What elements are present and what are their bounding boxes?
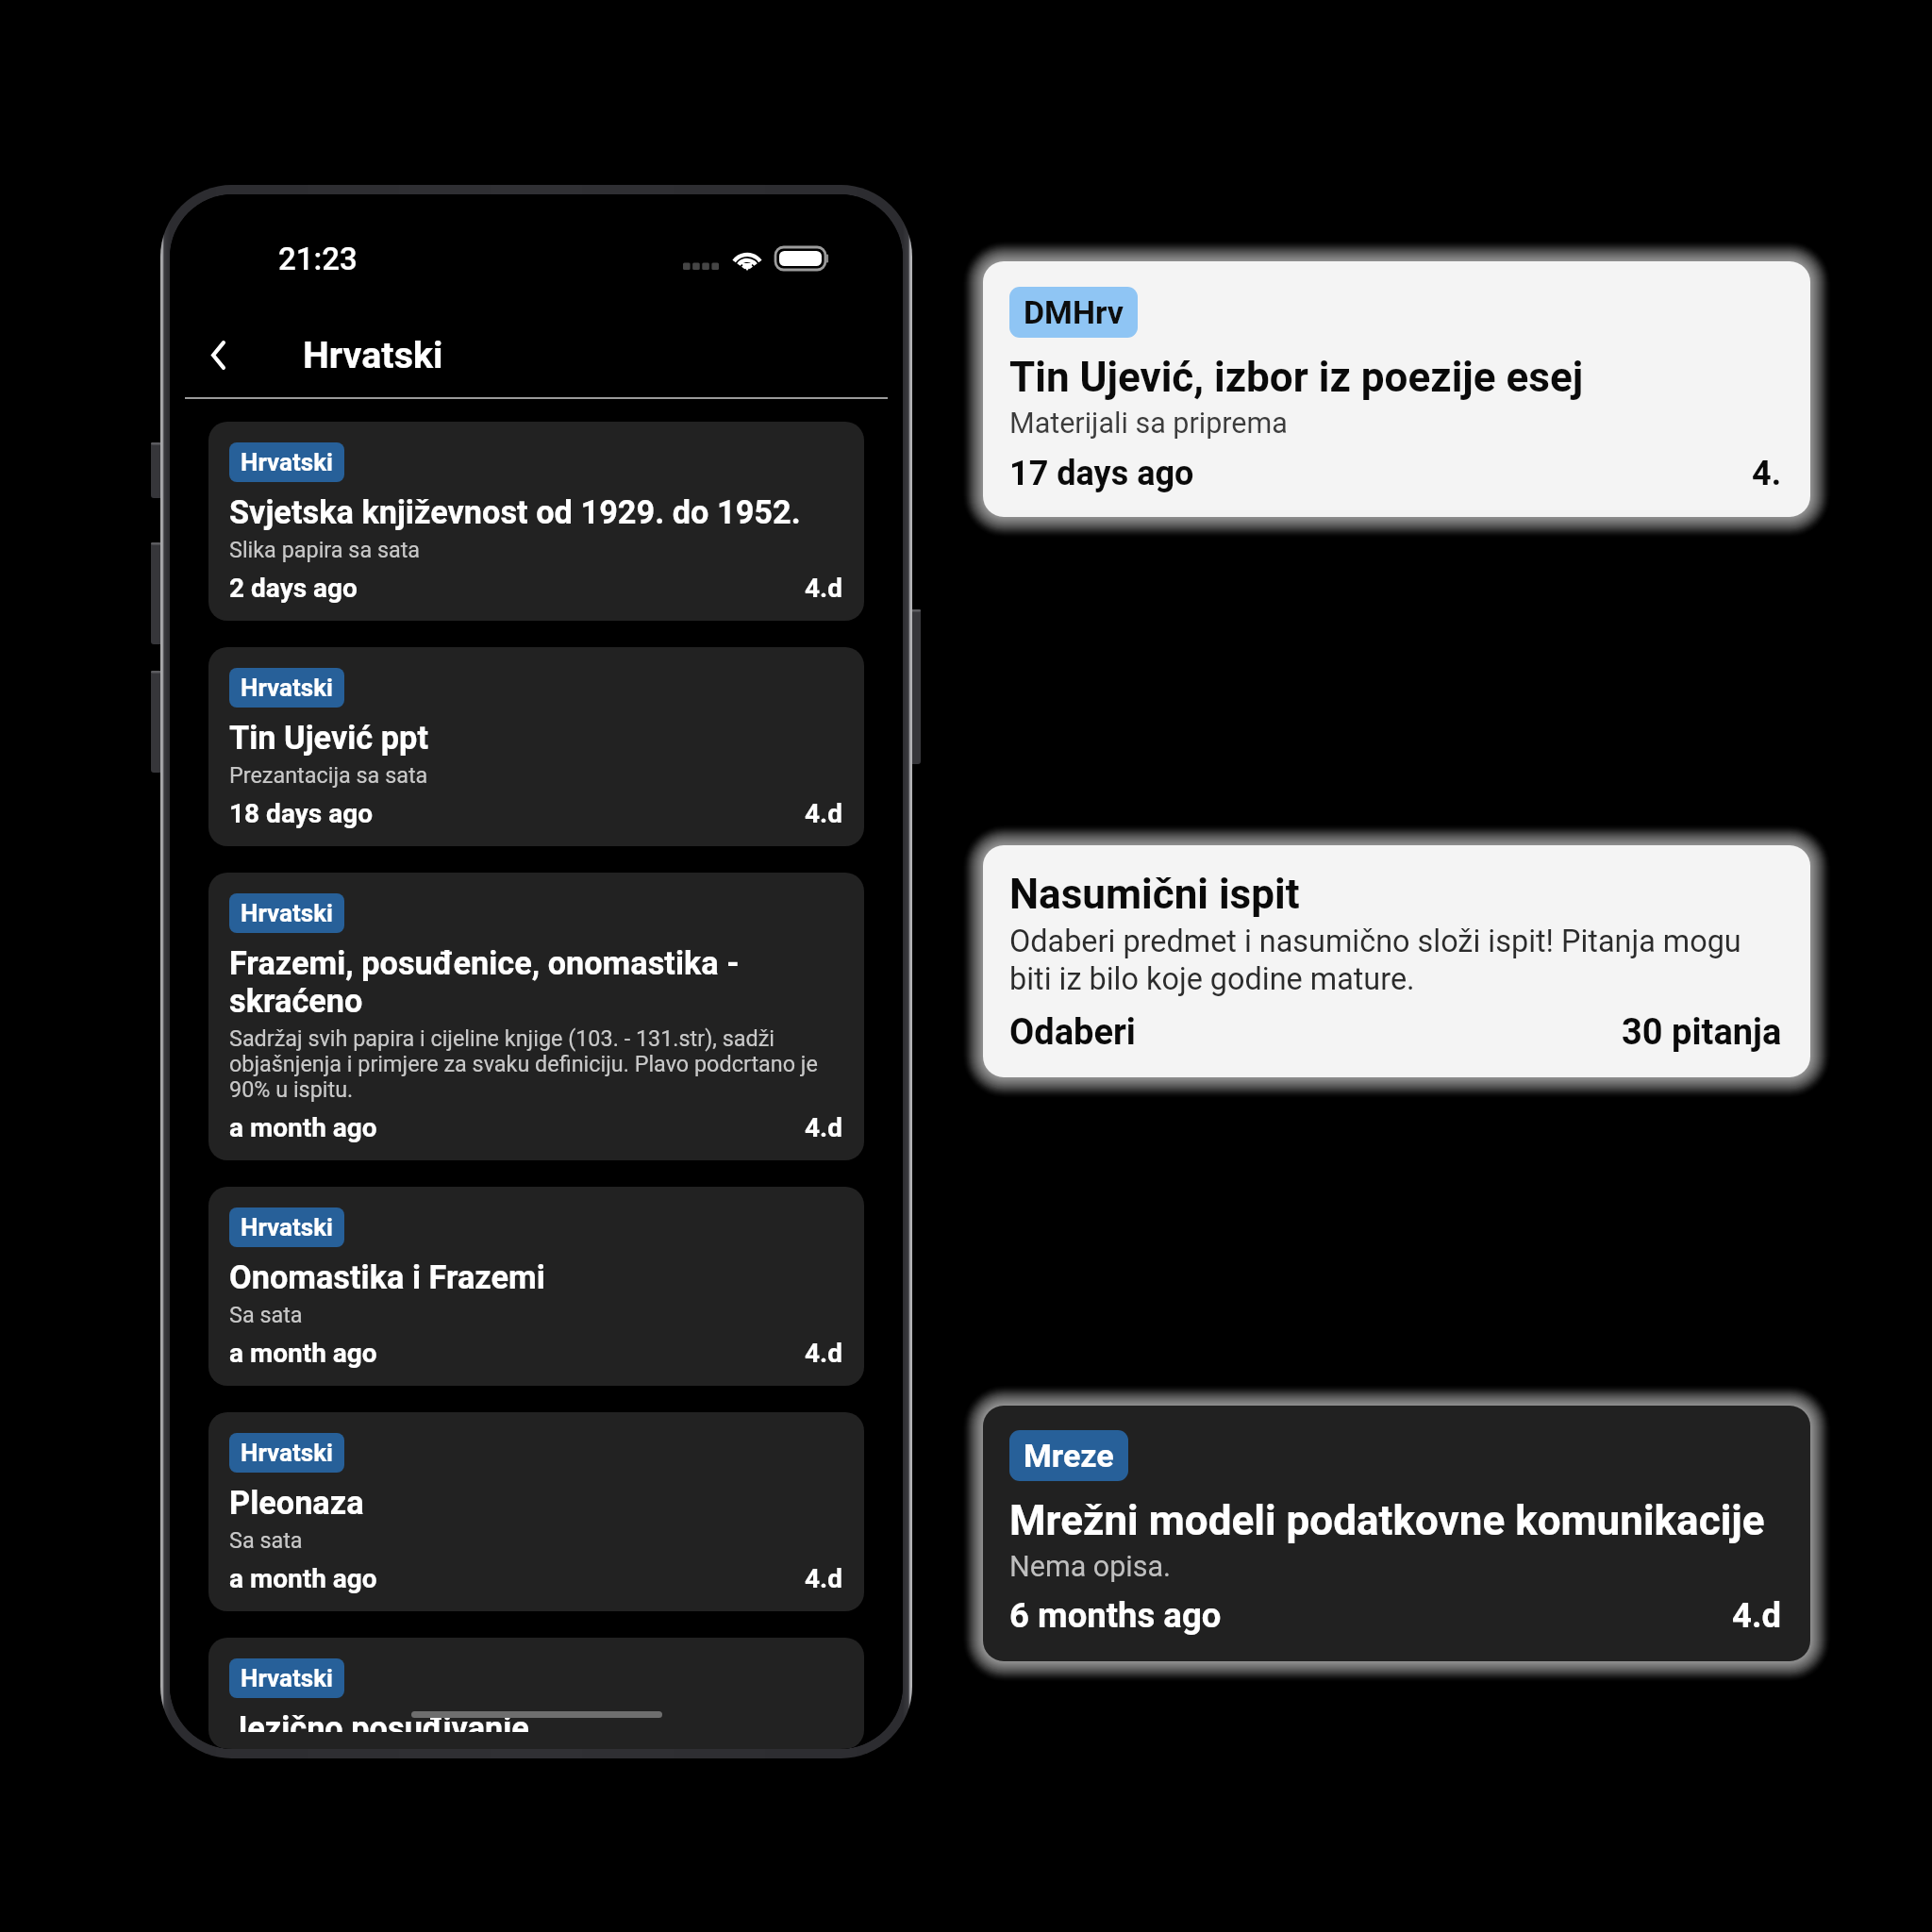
staticText: 4.d	[805, 1112, 843, 1143]
staticText: Onomastika i Frazemi	[229, 1258, 545, 1296]
staticText: Slika papira sa sata	[229, 537, 421, 562]
staticText: 18 days ago	[229, 798, 373, 829]
staticText: Hrvatski	[303, 333, 443, 376]
button[interactable]: Hrvatski	[208, 647, 864, 846]
staticText: Nema opisa.	[1009, 1550, 1172, 1584]
staticText: 4.d	[805, 1563, 843, 1594]
staticText: 4.d	[805, 1338, 843, 1369]
staticText: a month ago	[229, 1563, 377, 1594]
staticText: Hrvatski	[241, 1439, 333, 1467]
button[interactable]: Hrvatski	[208, 1412, 864, 1611]
staticText: Sa sata	[229, 1302, 303, 1327]
button[interactable]: Nasumični ispit	[983, 845, 1810, 1077]
button[interactable]: Back	[212, 321, 261, 389]
staticText: Tin Ujević, izbor iz poezije esej	[1009, 353, 1584, 402]
staticText: 4.d	[1732, 1595, 1782, 1636]
button[interactable]: Hrvatski	[208, 422, 864, 621]
button[interactable]: Hrvatski	[208, 1187, 864, 1386]
staticText: Hrvatski	[241, 674, 333, 702]
staticText: Hrvatski	[241, 899, 333, 927]
staticText: Nasumični ispit	[1009, 870, 1300, 919]
button[interactable]: Mreze	[983, 1406, 1810, 1661]
staticText: Mrežni modeli podatkovne komunikacije	[1009, 1496, 1765, 1545]
staticText: Hrvatski	[241, 448, 333, 476]
staticText: DMHrv	[1024, 293, 1124, 331]
staticText: Odaberi predmet i nasumično složi ispit!…	[1009, 924, 1782, 997]
staticText: Hrvatski	[241, 1213, 333, 1241]
button[interactable]: Hrvatski	[208, 873, 864, 1160]
staticText: Hrvatski	[241, 1664, 333, 1692]
staticText: Pleonaza	[229, 1484, 364, 1522]
staticText: a month ago	[229, 1338, 377, 1369]
staticText: Sadržaj svih papira i cijeline knjige (1…	[229, 1025, 843, 1102]
staticText: Frazemi, posuđenice, onomastika - skraće…	[229, 944, 843, 1020]
staticText: 2 days ago	[229, 573, 358, 604]
button[interactable]: DMHrv	[983, 261, 1810, 517]
staticText: Svjetska književnost od 1929. do 1952.	[229, 493, 801, 531]
staticText: a month ago	[229, 1112, 377, 1143]
staticText: 6 months ago	[1009, 1595, 1222, 1636]
staticText: Jezično posuđivanje	[229, 1709, 529, 1732]
staticText: 4.	[1752, 454, 1782, 493]
button[interactable]: Hrvatski	[208, 1638, 864, 1749]
staticText: 4.d	[805, 573, 843, 604]
staticText: Materijali sa priprema	[1009, 407, 1288, 441]
staticText: Tin Ujević ppt	[229, 719, 428, 757]
staticText: Sa sata	[229, 1527, 303, 1553]
staticText: 17 days ago	[1009, 454, 1194, 493]
staticText: 4.d	[805, 798, 843, 829]
staticText: 21:23	[278, 241, 358, 277]
staticText: Prezantacija sa sata	[229, 762, 428, 788]
staticText: Mreze	[1024, 1437, 1114, 1474]
staticText: 30 pitanja	[1622, 1011, 1782, 1054]
staticText: Odaberi	[1009, 1011, 1136, 1054]
